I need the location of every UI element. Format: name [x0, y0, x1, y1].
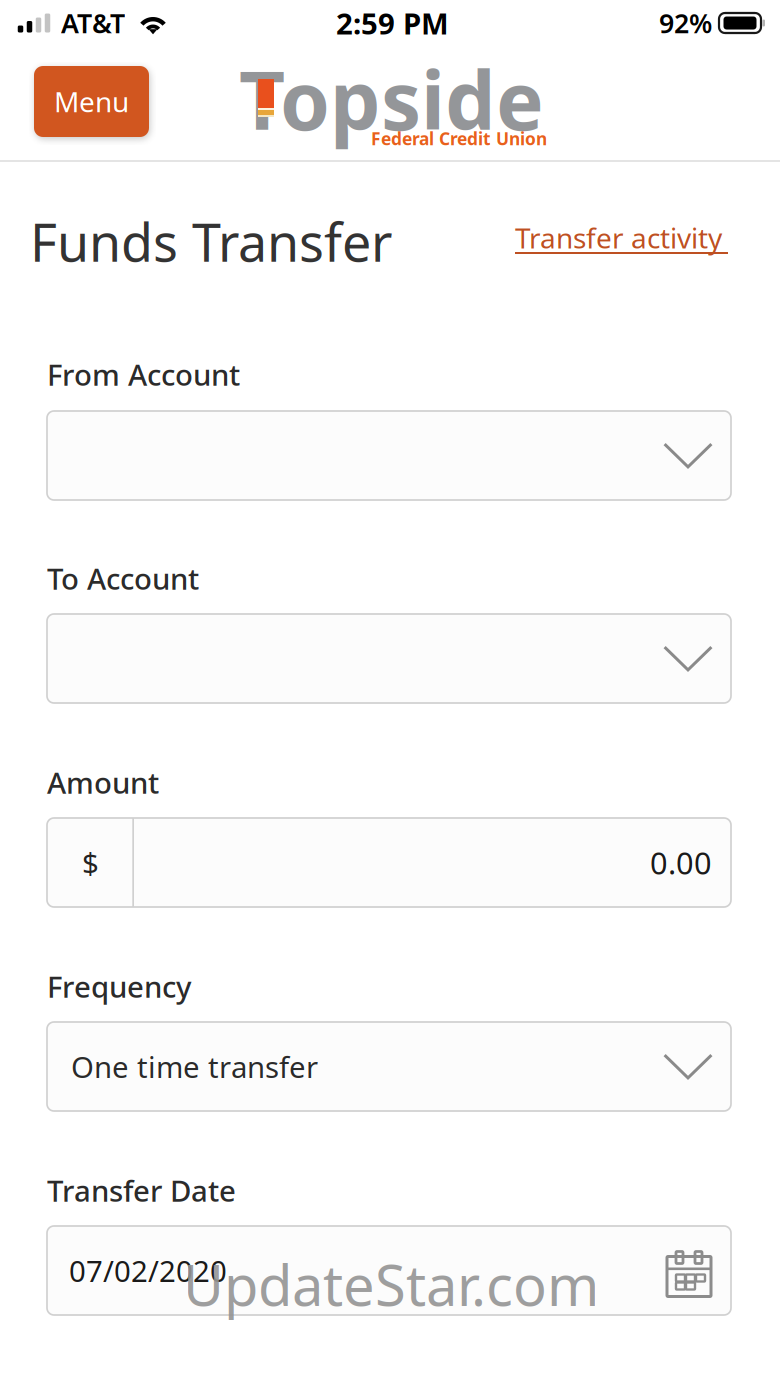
- button[interactable]: [47, 614, 731, 703]
- staticText: $: [82, 843, 99, 882]
- button[interactable]: Menu: [34, 66, 149, 137]
- staticText: UpdateStar.com: [183, 1247, 599, 1321]
- staticText: 07/02/2020: [69, 1251, 227, 1290]
- staticText: 92%: [659, 5, 712, 41]
- button[interactable]: $: [47, 818, 731, 907]
- staticText: AT&T: [61, 5, 125, 41]
- staticText: One time transfer: [71, 1047, 318, 1086]
- staticText: From Account: [47, 355, 240, 394]
- staticText: Menu: [54, 83, 129, 120]
- staticText: Frequency: [47, 967, 191, 1006]
- staticText: Funds Transfer: [30, 207, 392, 276]
- staticText: Topside: [239, 46, 544, 152]
- staticText: Transfer Date: [47, 1171, 236, 1210]
- staticText: Amount: [47, 763, 159, 802]
- staticText: To Account: [47, 559, 199, 598]
- button[interactable]: One time transfer: [47, 1022, 731, 1111]
- staticText: Federal Credit Union: [371, 127, 547, 150]
- staticText: 0.00: [650, 842, 712, 883]
- button[interactable]: Transfer activity: [515, 219, 731, 255]
- staticText: Transfer activity: [515, 219, 722, 256]
- staticText: 2:59 PM: [336, 3, 449, 42]
- button[interactable]: [47, 411, 731, 500]
- button[interactable]: 07/02/2020: [47, 1226, 731, 1315]
